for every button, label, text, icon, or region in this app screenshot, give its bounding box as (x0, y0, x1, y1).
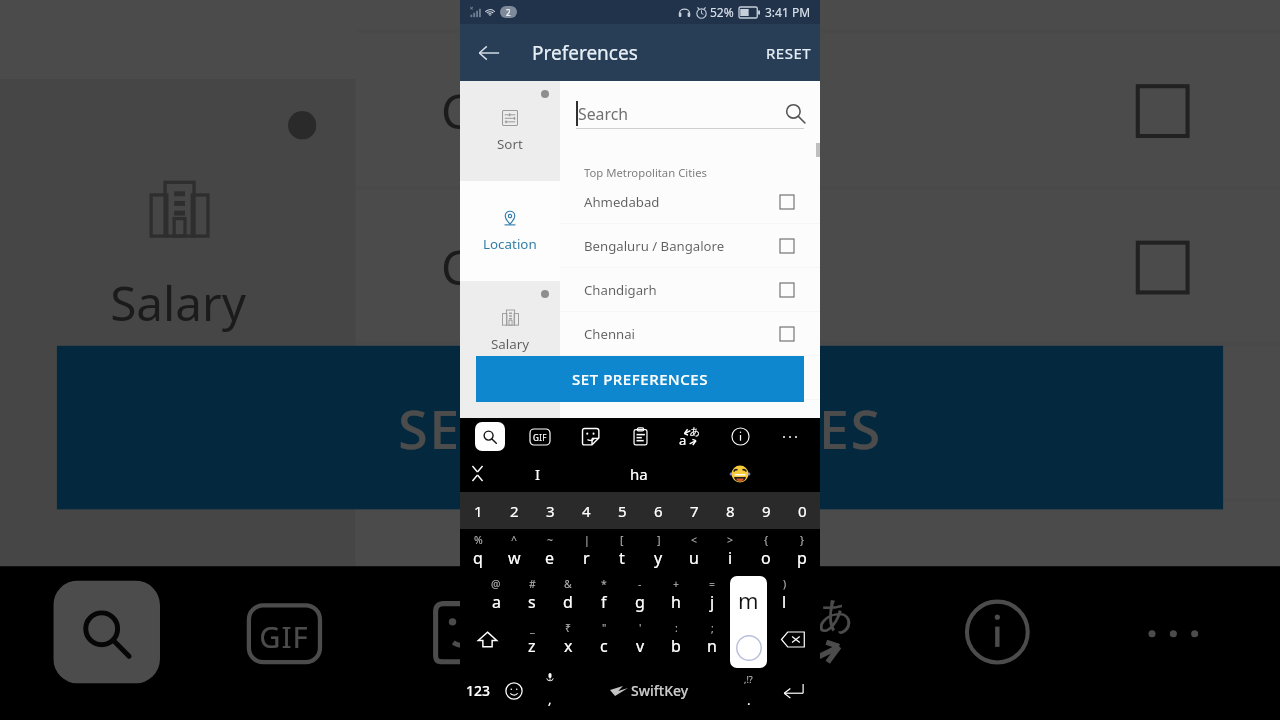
staticText: 4 (582, 501, 591, 521)
button[interactable]: Chennai (560, 312, 820, 356)
button[interactable]: 6 (640, 492, 676, 529)
button[interactable]: ₹ (550, 617, 586, 661)
staticText: 5 (618, 501, 627, 521)
staticText: = (709, 577, 716, 591)
button[interactable]: ] (640, 529, 676, 573)
button[interactable]: 5 (604, 492, 640, 529)
button[interactable]: Chandigarh (560, 268, 820, 312)
button[interactable]: GIF (518, 418, 562, 455)
button[interactable]: Delhi / NCR (560, 356, 820, 400)
button[interactable]: ; (694, 617, 730, 661)
button[interactable]: ,!? (730, 661, 766, 720)
staticText: a (779, 612, 807, 676)
button[interactable]: Info (718, 418, 762, 455)
staticText: ,!? (744, 673, 753, 685)
button[interactable]: Backspace (766, 617, 820, 661)
button[interactable]: ' (622, 617, 658, 661)
button[interactable]: Translate (668, 418, 712, 455)
button[interactable]: Location (460, 181, 560, 281)
staticText: Chandigarh (584, 281, 657, 299)
button[interactable]: - (622, 573, 658, 617)
button[interactable]: @ (478, 573, 514, 617)
button[interactable]: 123 (460, 661, 496, 720)
button[interactable]: I (487, 455, 588, 492)
button[interactable]: " (586, 617, 622, 661)
button[interactable]: Stickers (568, 418, 612, 455)
button[interactable]: ) (766, 573, 802, 617)
button[interactable]: ^ (496, 529, 532, 573)
staticText: s (528, 591, 536, 613)
staticText: m (738, 585, 759, 615)
button[interactable]: 8 (712, 492, 748, 529)
staticText: I (535, 464, 541, 484)
button[interactable]: Ahmedabad (560, 180, 820, 224)
staticText: t (619, 547, 625, 569)
button[interactable]: # (514, 573, 550, 617)
button[interactable]: Clipboard (618, 418, 662, 455)
button[interactable]: Shift (460, 617, 514, 661)
button[interactable] (689, 455, 790, 492)
button[interactable]: Back (467, 31, 511, 75)
staticText: m (741, 635, 756, 657)
staticText: o (761, 547, 771, 569)
staticText: _ (530, 621, 535, 635)
button[interactable]: Search (468, 418, 512, 455)
button[interactable]: 2 (496, 492, 532, 529)
button[interactable]: SwiftKey (568, 661, 730, 720)
staticText: RESET (766, 43, 812, 63)
staticText: a (679, 431, 687, 449)
staticText: 9 (762, 501, 771, 521)
staticText: a (492, 591, 501, 613)
button[interactable]: [ (604, 529, 640, 573)
button[interactable]: Collapse toolbar (460, 455, 495, 492)
button[interactable]: , (532, 661, 568, 720)
button[interactable]: More options (768, 418, 812, 455)
staticText: Chennai (584, 325, 636, 343)
button[interactable]: + (658, 573, 694, 617)
button[interactable]: Sort (460, 81, 560, 181)
staticText: あ (818, 591, 857, 637)
button[interactable]: ? (730, 617, 766, 661)
button[interactable]: Enter (766, 661, 820, 720)
staticText: ₹ (565, 621, 572, 635)
staticText: [ (620, 533, 624, 547)
staticText: b (671, 635, 681, 657)
button[interactable]: 7 (676, 492, 712, 529)
button[interactable]: Salary (460, 281, 560, 381)
button[interactable]: } (784, 529, 820, 573)
button[interactable]: ~ (532, 529, 568, 573)
staticText: r (583, 547, 590, 569)
staticText: Chennai (441, 236, 626, 300)
staticText: - (638, 577, 642, 591)
button[interactable]: Bengaluru / Bangalore (560, 224, 820, 268)
button[interactable]: SET PREFERENCES (476, 356, 804, 402)
button[interactable]: RESET (750, 24, 820, 81)
button[interactable]: * (586, 573, 622, 617)
staticText: Chandigarh (441, 79, 700, 143)
button[interactable]: 3 (532, 492, 568, 529)
button[interactable]: & (550, 573, 586, 617)
staticText: 6 (654, 501, 663, 521)
button[interactable]: 1 (460, 492, 496, 529)
staticText: { (764, 533, 768, 547)
staticText: SET PREFERENCES (398, 392, 885, 463)
button[interactable]: | (568, 529, 604, 573)
button[interactable]: 9 (748, 492, 784, 529)
staticText: f (601, 591, 607, 613)
button[interactable]: % (460, 529, 496, 573)
button[interactable]: { (748, 529, 784, 573)
button[interactable]: _ (514, 617, 550, 661)
button[interactable]: 4 (568, 492, 604, 529)
staticText: あ (690, 425, 701, 438)
staticText: w (508, 547, 521, 569)
button[interactable]: ( (730, 573, 766, 617)
staticText: h (671, 591, 681, 613)
button[interactable]: ha (588, 455, 689, 492)
button[interactable]: : (658, 617, 694, 661)
button[interactable]: 0 (784, 492, 820, 529)
button[interactable]: < (676, 529, 712, 573)
button[interactable]: > (712, 529, 748, 573)
button[interactable]: = (694, 573, 730, 617)
button[interactable]: Emoji (496, 661, 532, 720)
